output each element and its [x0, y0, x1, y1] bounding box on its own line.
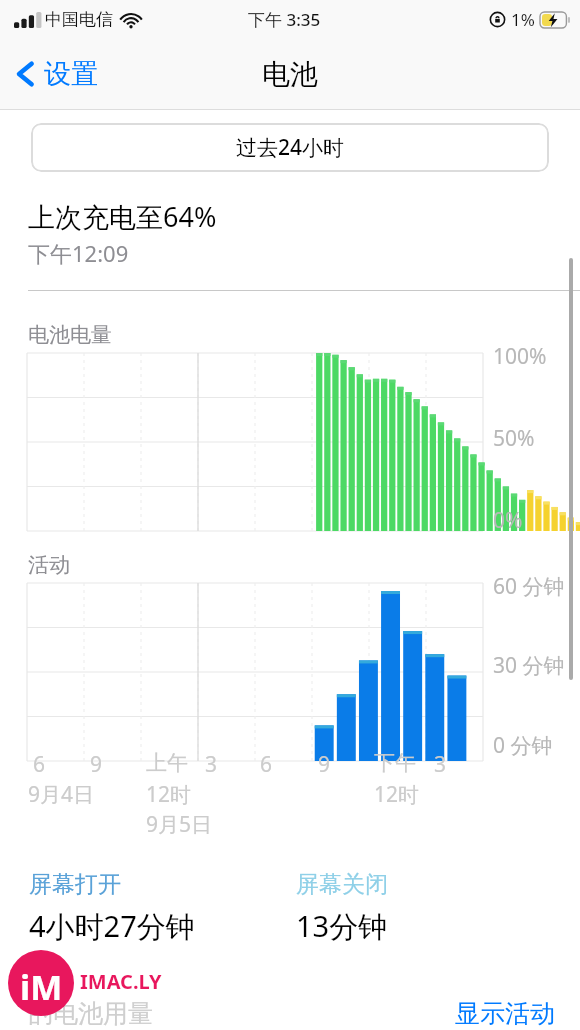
button[interactable]: 设置 — [10, 51, 104, 97]
staticText: 9 — [318, 750, 331, 779]
staticText: 13分钟 — [296, 906, 388, 946]
staticText: 0% — [493, 506, 523, 535]
staticText: 过去24小时 — [236, 133, 345, 162]
staticText: 9月4日 — [28, 780, 95, 809]
staticText: 中国电信 — [45, 9, 113, 30]
staticText: 显示活动 — [455, 998, 555, 1029]
staticText: 6 — [260, 750, 273, 779]
staticText: iM — [20, 964, 63, 1010]
staticText: 上午 — [146, 750, 188, 776]
staticText: 1% — [511, 8, 535, 31]
staticText: IMAC.LY — [80, 968, 162, 995]
staticText: 9月5日 — [146, 810, 213, 839]
staticText: 下午 3:35 — [248, 8, 321, 31]
staticText: 6 — [33, 750, 46, 779]
staticText: 12时 — [146, 780, 192, 809]
staticText: 4小时27分钟 — [29, 906, 195, 946]
staticText: 60 分钟 — [493, 572, 565, 601]
staticText: 30 分钟 — [493, 651, 565, 680]
staticText: 3 — [205, 750, 218, 779]
staticText: 的电池用量 — [28, 998, 153, 1029]
staticText: 下午12:09 — [28, 238, 129, 268]
staticText: 屏幕打开 — [29, 870, 121, 899]
staticText: 电池 — [262, 57, 318, 92]
staticText: 0 分钟 — [493, 731, 553, 760]
staticText: 下午 — [374, 750, 416, 776]
staticText: 屏幕关闭 — [296, 870, 388, 899]
staticText: 设置 — [44, 57, 98, 91]
staticText: 上次充电至64% — [28, 198, 217, 235]
staticText: 电池电量 — [28, 322, 112, 348]
button[interactable]: 显示活动 — [455, 998, 555, 1029]
button[interactable]: 的电池用量 — [28, 998, 153, 1029]
staticText: 12时 — [374, 780, 420, 809]
staticText: 50% — [493, 424, 535, 453]
staticText: 3 — [434, 750, 447, 779]
button[interactable]: 过去24小时 — [31, 123, 549, 172]
staticText: 100% — [493, 342, 547, 371]
staticText: 活动 — [28, 552, 70, 578]
staticText: 9 — [90, 750, 103, 779]
